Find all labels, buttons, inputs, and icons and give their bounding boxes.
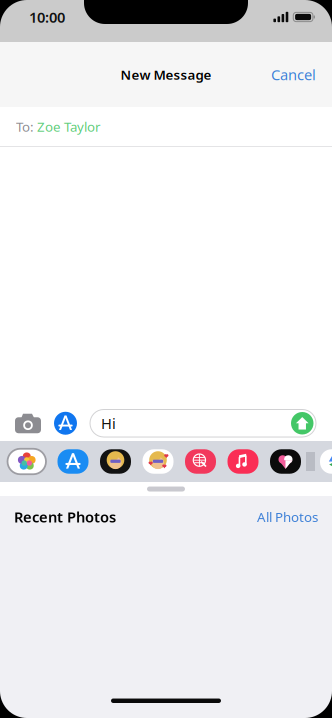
staticText: New Message bbox=[120, 66, 211, 83]
staticText: 10:00 bbox=[29, 7, 65, 27]
button[interactable]: Music bbox=[227, 449, 258, 474]
staticText: Zoe Taylor bbox=[37, 118, 101, 135]
button[interactable]: Memoji Stickers bbox=[142, 449, 173, 474]
staticText: All Photos bbox=[257, 508, 318, 526]
staticText: Recent Photos bbox=[14, 507, 116, 526]
button[interactable]: All Photos bbox=[257, 508, 318, 526]
button[interactable]: Digital Touch bbox=[270, 449, 301, 474]
button[interactable]: Send bbox=[291, 412, 313, 434]
staticText: Cancel bbox=[271, 65, 316, 84]
button[interactable]: App Store bbox=[57, 449, 88, 474]
staticText: Hi bbox=[101, 413, 116, 433]
button[interactable]: Camera bbox=[15, 413, 41, 433]
button[interactable]: Google Photos bbox=[320, 449, 332, 474]
button[interactable]: Cancel bbox=[263, 59, 324, 90]
button[interactable]: Memoji bbox=[100, 449, 131, 474]
staticText: To: bbox=[16, 118, 34, 135]
button[interactable]: Images bbox=[185, 449, 216, 474]
button[interactable]: Apps bbox=[54, 412, 77, 435]
button[interactable]: Photos bbox=[7, 449, 46, 474]
